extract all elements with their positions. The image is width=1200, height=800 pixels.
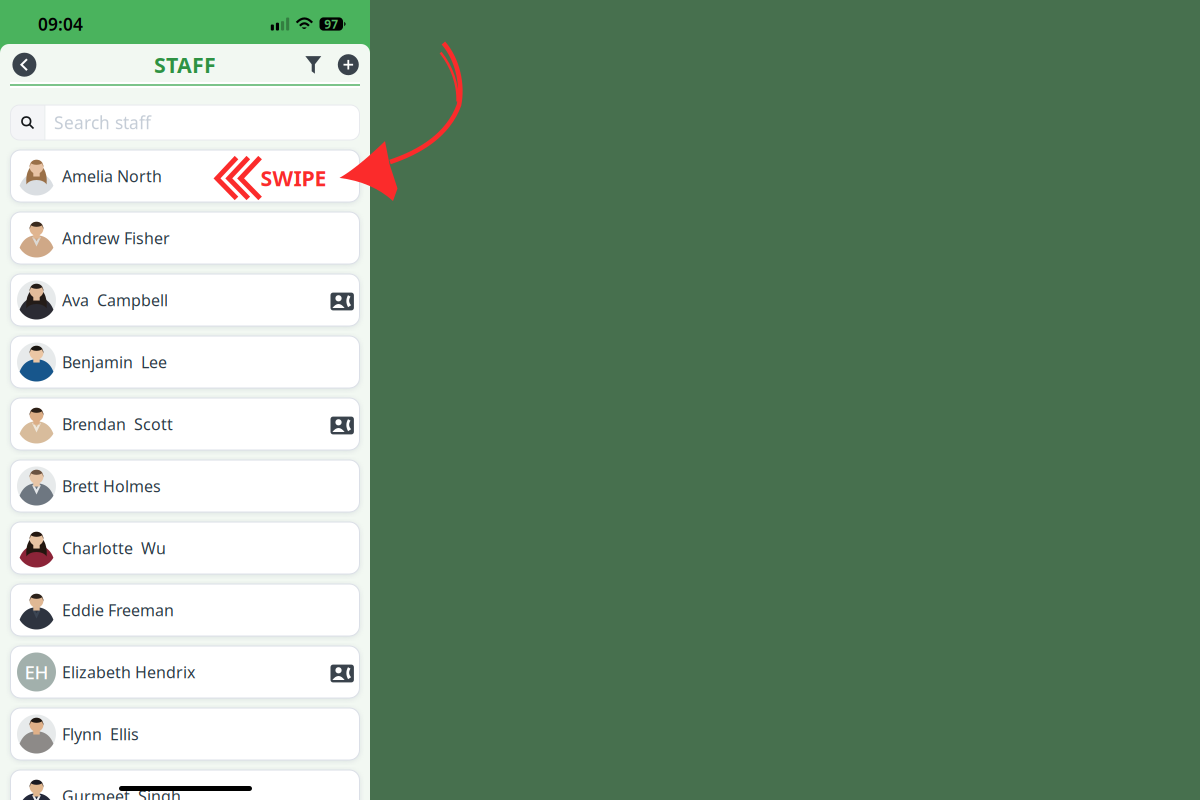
button[interactable]: Contact card for Elizabeth Hendrix: [330, 663, 354, 681]
staticText: Amelia North: [62, 165, 162, 187]
button[interactable]: Back: [12, 53, 36, 77]
staticText: Flynn Ellis: [62, 723, 139, 745]
button[interactable]: Filter: [305, 56, 321, 74]
staticText: STAFF: [154, 50, 216, 79]
button[interactable]: Gurmeet Singh: [10, 770, 359, 800]
staticText: Andrew Fisher: [62, 227, 170, 249]
staticText: Brett Holmes: [62, 475, 161, 497]
button[interactable]: Benjamin Lee: [10, 336, 359, 388]
staticText: Search staff: [54, 111, 151, 134]
button[interactable]: Flynn Ellis: [10, 708, 359, 760]
staticText: Eddie Freeman: [62, 599, 174, 621]
button[interactable]: Add staff: [338, 54, 359, 75]
button[interactable]: Brendan Scott: [10, 398, 359, 450]
button[interactable]: Ava Campbell: [10, 274, 359, 326]
button[interactable]: Contact card for Ava Campbell: [330, 291, 354, 309]
button[interactable]: Contact card for Brendan Scott: [330, 415, 354, 433]
button[interactable]: Charlotte Wu: [10, 522, 359, 574]
staticText: Charlotte Wu: [62, 537, 166, 559]
staticText: Benjamin Lee: [62, 351, 167, 373]
staticText: SWIPE: [260, 164, 326, 192]
button[interactable]: Eddie Freeman: [10, 584, 359, 636]
staticText: Elizabeth Hendrix: [62, 661, 195, 683]
staticText: EH: [24, 660, 48, 684]
button[interactable]: Brett Holmes: [10, 460, 359, 512]
staticText: 97: [324, 16, 338, 32]
button[interactable]: EH: [10, 646, 359, 698]
staticText: 09:04: [38, 12, 83, 35]
button[interactable]: Amelia North: [10, 150, 359, 202]
staticText: Ava Campbell: [62, 289, 168, 311]
button[interactable]: Search staff: [10, 105, 359, 140]
button[interactable]: Andrew Fisher: [10, 212, 359, 264]
staticText: Gurmeet Singh: [62, 785, 181, 800]
staticText: Brendan Scott: [62, 413, 173, 435]
